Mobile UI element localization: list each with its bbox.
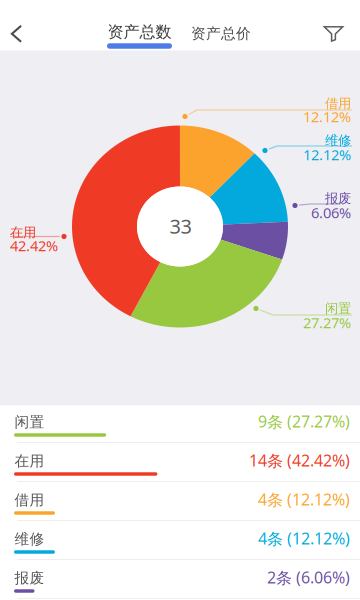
button[interactable]: 维修 xyxy=(0,522,360,561)
staticText: 闲置 xyxy=(325,300,351,317)
staticText: 报废 xyxy=(325,190,351,207)
staticText: 33 xyxy=(169,213,191,239)
button[interactable]: 报废 xyxy=(0,561,360,600)
staticText: 4条 (12.12%) xyxy=(258,528,350,549)
staticText: 报废 xyxy=(14,569,44,587)
staticText: 维修 xyxy=(325,132,351,149)
staticText: 2条 (6.06%) xyxy=(267,567,350,588)
staticText: 借用 xyxy=(14,491,44,509)
staticText: 在用 xyxy=(10,224,36,241)
button[interactable]: 闲置 xyxy=(0,405,360,444)
staticText: 资产总价 xyxy=(191,24,251,42)
button[interactable]: 筛选 xyxy=(313,12,353,56)
button[interactable]: 借用 xyxy=(0,483,360,522)
button[interactable]: 资产总数 xyxy=(94,0,184,50)
staticText: 资产总数 xyxy=(107,22,171,42)
staticText: 4条 (12.12%) xyxy=(258,489,350,510)
button[interactable]: 在用 xyxy=(0,444,360,483)
staticText: 在用 xyxy=(14,452,44,470)
staticText: 27.27% xyxy=(303,313,351,332)
staticText: 维修 xyxy=(14,530,44,548)
staticText: 12.12% xyxy=(303,107,351,126)
staticText: 42.42% xyxy=(10,236,58,255)
staticText: 借用 xyxy=(325,95,351,112)
staticText: 14条 (42.42%) xyxy=(249,450,350,471)
staticText: 9条 (27.27%) xyxy=(258,411,350,432)
button[interactable]: 返回 xyxy=(0,12,36,56)
staticText: 6.06% xyxy=(311,203,351,222)
staticText: 闲置 xyxy=(14,413,44,431)
staticText: 12.12% xyxy=(303,145,351,164)
button[interactable]: 资产总价 xyxy=(186,0,256,50)
